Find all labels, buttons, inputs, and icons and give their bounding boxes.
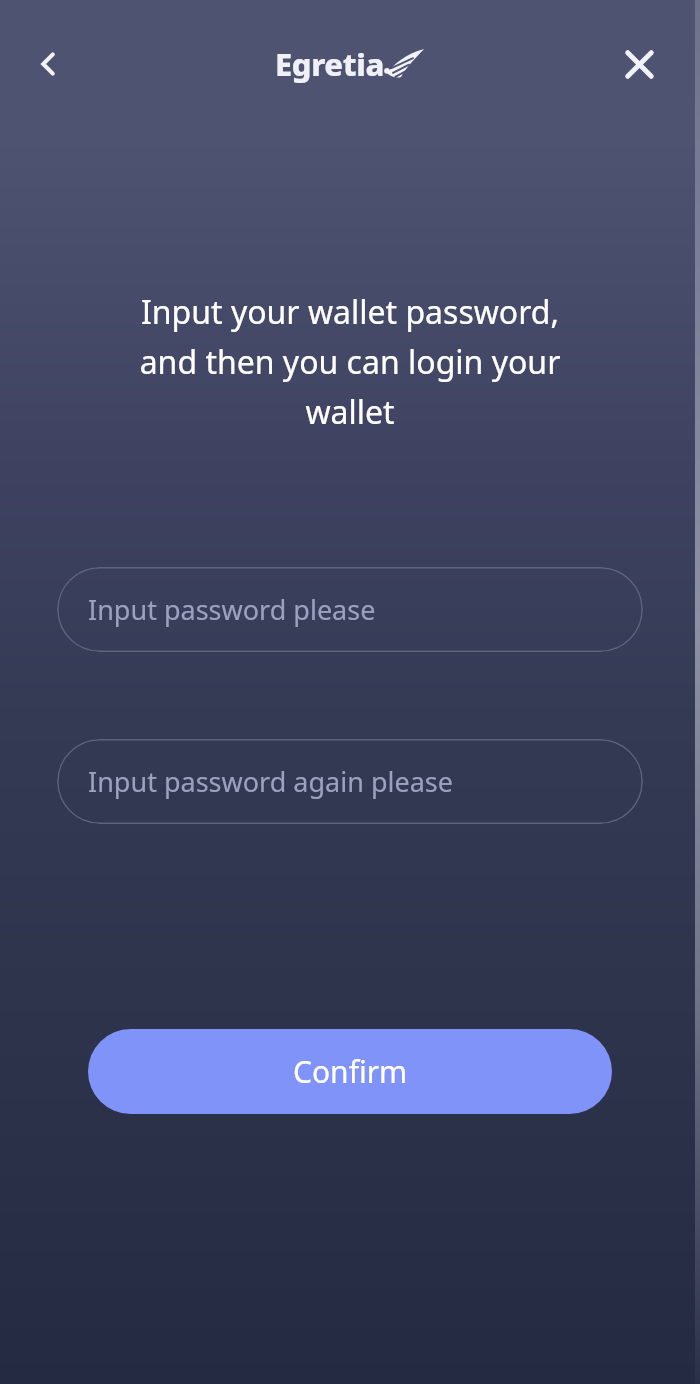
staticText: Egretia [275,43,384,85]
button[interactable]: Back [16,32,80,96]
staticText: Input your wallet password, and then you… [28,290,672,434]
button[interactable]: Input password please [57,567,643,652]
staticText: Confirm [293,1051,408,1092]
staticText: Input password again please [88,763,453,800]
button[interactable]: Close [607,32,671,96]
staticText: Input password please [88,591,376,628]
button[interactable]: Confirm [88,1029,612,1114]
button[interactable]: Input password again please [57,739,643,824]
